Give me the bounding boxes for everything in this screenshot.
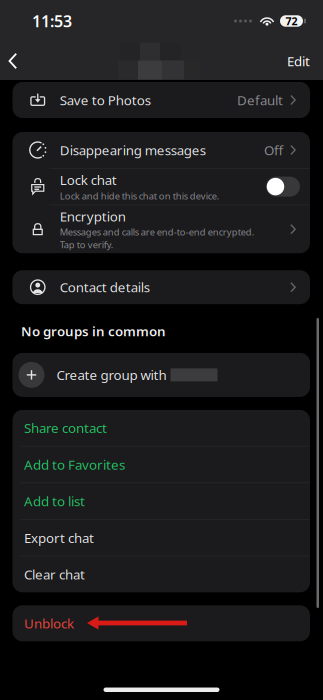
button[interactable]: Unblock [12, 605, 310, 641]
staticText: Lock chat [60, 171, 117, 189]
button[interactable]: Add to list [12, 483, 310, 519]
staticText: Export chat [24, 529, 94, 547]
staticText: No groups in common [21, 322, 166, 340]
staticText: Add to Favorites [24, 456, 125, 473]
staticText: Unblock [24, 614, 74, 632]
staticText: Disappearing messages [60, 141, 206, 159]
button[interactable]: Edit [275, 42, 323, 80]
staticText: Lock and hide this chat on this device. [60, 190, 220, 202]
button[interactable]: Lock chat [12, 169, 310, 205]
staticText: Default [237, 91, 283, 109]
button[interactable]: Disappearing messages [12, 132, 310, 168]
button[interactable]: Contact details [12, 270, 310, 304]
staticText: Tap to verify. [60, 239, 114, 251]
button[interactable]: Export chat [12, 520, 310, 556]
staticText: Off [264, 141, 283, 159]
staticText: Edit [287, 52, 310, 70]
staticText: 72 [285, 14, 297, 28]
button[interactable]: Clear chat [12, 556, 310, 592]
button[interactable]: Save to Photos [12, 82, 310, 118]
staticText: Contact details [60, 278, 150, 296]
button[interactable]: Encryption [12, 205, 310, 253]
button[interactable]: Share contact [12, 410, 310, 446]
staticText: Clear chat [24, 565, 85, 583]
button[interactable]: Back [0, 42, 30, 80]
staticText: Create group with [56, 366, 166, 384]
staticText: Add to list [24, 492, 85, 510]
button[interactable]: Add to Favorites [12, 446, 310, 482]
staticText: Encryption [60, 207, 126, 225]
staticText: Messages and calls are end-to-end encryp… [60, 226, 255, 238]
button[interactable]: Create group with [12, 353, 310, 397]
staticText: Save to Photos [60, 91, 151, 109]
staticText: Share contact [24, 419, 107, 437]
staticText: 11:53 [32, 10, 72, 32]
